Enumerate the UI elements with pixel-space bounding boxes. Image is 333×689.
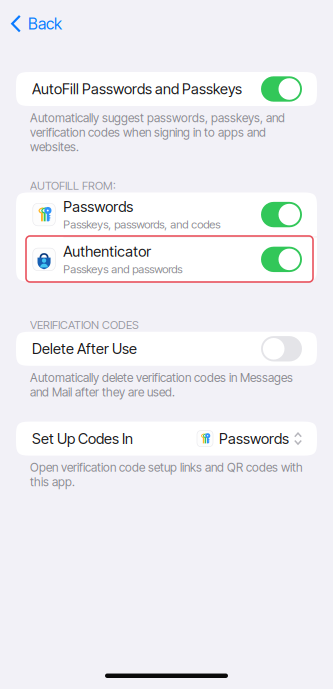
button[interactable]: Set Up Codes In bbox=[16, 422, 317, 456]
button[interactable]: Back bbox=[0, 0, 62, 41]
staticText: Back bbox=[28, 14, 62, 33]
staticText: Passwords bbox=[63, 198, 133, 215]
staticText: Set Up Codes In bbox=[32, 430, 133, 447]
staticText: Passkeys and passwords bbox=[63, 262, 182, 276]
staticText: Open verification code setup links and Q… bbox=[30, 460, 303, 489]
staticText: VERIFICATION CODES bbox=[30, 318, 139, 332]
staticText: AUTOFILL FROM: bbox=[30, 179, 116, 192]
staticText: Passkeys, passwords, and codes bbox=[63, 218, 220, 231]
button[interactable]: Authenticator bbox=[16, 237, 317, 281]
staticText: Authenticator bbox=[63, 243, 151, 260]
button[interactable]: AutoFill Passwords and Passkeys bbox=[16, 72, 317, 106]
staticText: Delete After Use bbox=[32, 340, 137, 358]
button[interactable]: Passwords bbox=[16, 192, 317, 237]
staticText: Passwords bbox=[219, 430, 289, 447]
staticText: Automatically suggest passwords, passkey… bbox=[30, 110, 285, 154]
staticText: Automatically delete verification codes … bbox=[30, 370, 293, 399]
staticText: AutoFill Passwords and Passkeys bbox=[32, 80, 242, 98]
button[interactable]: Delete After Use bbox=[16, 332, 317, 366]
